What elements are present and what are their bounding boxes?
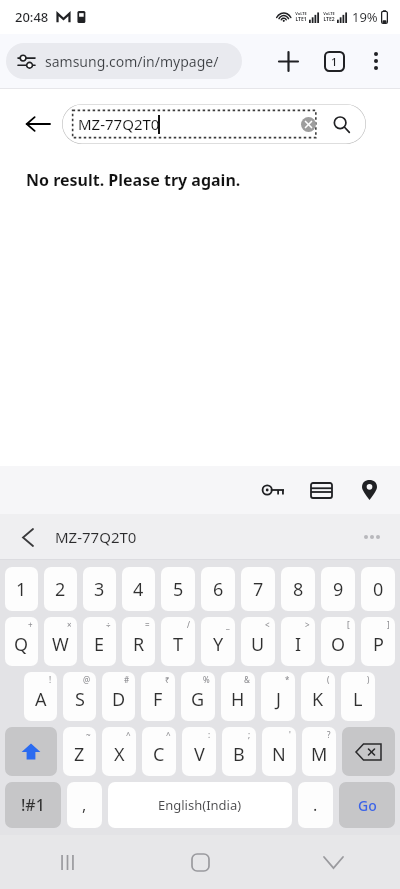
button[interactable]: 6	[201, 567, 235, 611]
button[interactable]: Passwords	[256, 473, 290, 507]
button[interactable]: Search	[328, 111, 354, 137]
staticText: ?	[327, 729, 331, 740]
button[interactable]: !#1	[5, 782, 61, 828]
staticText: Go	[358, 796, 377, 815]
staticText: 20:48	[15, 8, 49, 26]
button[interactable]: =	[122, 617, 155, 666]
staticText: ÷	[106, 619, 111, 630]
button[interactable]: Home	[134, 835, 267, 889]
button[interactable]: #	[102, 672, 135, 721]
staticText: #	[124, 674, 130, 685]
button[interactable]: MZ-77Q2T0	[62, 104, 366, 144]
button[interactable]: .	[298, 782, 333, 828]
button[interactable]: 5	[161, 567, 195, 611]
staticText: .	[313, 794, 318, 816]
button[interactable]: Back	[18, 104, 58, 144]
button[interactable]: Backspace	[342, 727, 395, 776]
button[interactable]: More options	[358, 43, 394, 79]
button[interactable]: %	[181, 672, 215, 721]
staticText: 5	[173, 577, 184, 602]
staticText: (	[327, 674, 330, 685]
button[interactable]: ^	[142, 727, 176, 776]
staticText: >	[305, 619, 310, 630]
button[interactable]: :	[182, 727, 216, 776]
button[interactable]: New tab	[270, 43, 306, 79]
staticText: %	[203, 674, 210, 685]
button[interactable]: More suggestions	[354, 519, 390, 555]
staticText: B	[233, 742, 245, 767]
button[interactable]: Payment methods	[304, 473, 338, 507]
staticText: 19%	[352, 8, 378, 26]
button[interactable]: 4	[122, 567, 155, 611]
staticText: _	[226, 619, 230, 630]
staticText: R	[133, 632, 145, 657]
button[interactable]: ÷	[83, 617, 116, 666]
button[interactable]: &	[221, 672, 255, 721]
button[interactable]: Previous suggestions	[10, 519, 46, 555]
button[interactable]: English(India)	[108, 782, 292, 828]
button[interactable]: Recents	[0, 835, 134, 889]
button[interactable]: Hide keyboard	[267, 835, 400, 889]
button[interactable]: (	[301, 672, 335, 721]
staticText: 3	[94, 577, 105, 602]
staticText: ₹	[165, 674, 170, 685]
staticText: W	[52, 632, 69, 657]
button[interactable]: MZ-77Q2T0	[55, 527, 137, 547]
button[interactable]: [	[321, 617, 355, 666]
button[interactable]: *	[261, 672, 295, 721]
staticText: G	[191, 687, 205, 712]
button[interactable]: 1	[5, 567, 38, 611]
staticText: ,	[82, 794, 87, 816]
staticText: P	[373, 632, 384, 657]
staticText: U	[251, 632, 265, 657]
button[interactable]: 8	[281, 567, 315, 611]
staticText: S	[75, 687, 85, 712]
staticText: LTE2	[323, 16, 335, 23]
button[interactable]: Go	[339, 782, 395, 828]
staticText: VoLTE	[295, 11, 307, 16]
staticText: X	[114, 742, 125, 767]
button[interactable]: ,	[67, 782, 102, 828]
button[interactable]: ₹	[141, 672, 175, 721]
button[interactable]: ?	[302, 727, 336, 776]
button[interactable]: 2	[44, 567, 77, 611]
staticText: V	[194, 742, 205, 767]
staticText: *	[285, 674, 290, 685]
button[interactable]: ^	[102, 727, 136, 776]
button[interactable]: '	[262, 727, 296, 776]
button[interactable]: 7	[241, 567, 275, 611]
staticText: C	[153, 742, 165, 767]
staticText: ×	[67, 619, 72, 630]
button[interactable]: 9	[321, 567, 355, 611]
button[interactable]: /	[161, 617, 195, 666]
button[interactable]: Clear	[296, 112, 320, 136]
staticText: J	[276, 687, 281, 712]
staticText: A	[35, 687, 47, 712]
staticText: Q	[14, 632, 29, 657]
button[interactable]: _	[201, 617, 235, 666]
button[interactable]: )	[341, 672, 375, 721]
staticText: 4	[133, 577, 144, 602]
button[interactable]: !	[24, 672, 57, 721]
staticText: MZ-77Q2T0	[78, 114, 160, 134]
button[interactable]: ]	[361, 617, 395, 666]
button[interactable]: @	[63, 672, 96, 721]
button[interactable]: +	[5, 617, 38, 666]
staticText: ^	[166, 729, 171, 740]
staticText: Y	[213, 632, 224, 657]
button[interactable]: Shift	[5, 727, 57, 776]
staticText: 1	[16, 577, 27, 602]
staticText: <	[265, 619, 270, 630]
button[interactable]: ×	[44, 617, 77, 666]
staticText: 1	[331, 54, 338, 69]
button[interactable]: samsung.com/in/mypage/	[6, 43, 242, 79]
button[interactable]: Tabs	[316, 43, 352, 79]
button[interactable]: 0	[361, 567, 395, 611]
button[interactable]: ~	[63, 727, 96, 776]
button[interactable]: 3	[83, 567, 116, 611]
button[interactable]: >	[281, 617, 315, 666]
button[interactable]: ;	[222, 727, 256, 776]
staticText: 0	[373, 577, 384, 602]
button[interactable]: <	[241, 617, 275, 666]
button[interactable]: Addresses	[352, 473, 386, 507]
